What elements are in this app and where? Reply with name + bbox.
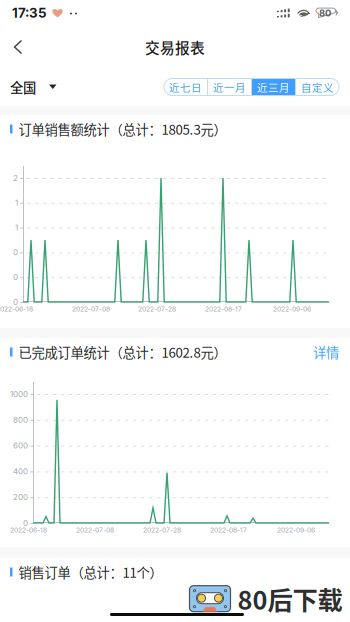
staticText: 80后下载 xyxy=(237,580,342,617)
staticText: 600 xyxy=(13,441,28,450)
staticText: 订单销售额统计（总计：1805.3元） xyxy=(18,119,226,139)
staticText: 近一月 xyxy=(213,79,246,95)
staticText: 0 xyxy=(13,297,18,307)
staticText: 全国 xyxy=(10,77,36,97)
staticText: 交易报表 xyxy=(145,36,205,58)
staticText: 1 xyxy=(15,223,18,232)
staticText: 详情 xyxy=(313,342,339,362)
staticText: 2022-08-17 xyxy=(210,526,247,534)
button[interactable]: 近七日 xyxy=(164,78,207,95)
staticText: 2022-07-28 xyxy=(143,526,181,534)
staticText: 2022-07-28 xyxy=(138,305,176,313)
staticText: 2022-07-08 xyxy=(72,305,110,313)
staticText: 200 xyxy=(13,492,28,502)
staticText: 0 xyxy=(13,248,18,257)
staticText: 2022-09-06 xyxy=(273,305,311,313)
staticText: 近三月 xyxy=(257,79,290,95)
staticText: 2 xyxy=(13,173,18,183)
staticText: 400 xyxy=(13,467,28,476)
button[interactable]: 近三月 xyxy=(252,78,295,95)
staticText: 2022-06-18 xyxy=(10,526,47,534)
staticText: 0 xyxy=(23,518,28,528)
button[interactable]: 详情 xyxy=(302,338,350,366)
button[interactable]: 全国 xyxy=(0,68,65,106)
staticText: 800 xyxy=(13,415,28,425)
staticText: 17:35 xyxy=(12,5,47,21)
staticText: 2022-08-17 xyxy=(205,305,242,313)
staticText: 近七日 xyxy=(169,79,202,95)
staticText: 1 xyxy=(15,198,18,208)
staticText: 1000 xyxy=(10,389,28,399)
staticText: 自定义 xyxy=(301,79,334,95)
staticText: 2022-09-06 xyxy=(277,526,315,534)
staticText: 2022-07-08 xyxy=(76,526,114,534)
staticText: 已完成订单统计（总计：1602.8元） xyxy=(18,342,226,362)
button[interactable]: 返回 xyxy=(0,26,41,68)
staticText: 022-06-18 xyxy=(0,305,33,313)
button[interactable]: 自定义 xyxy=(296,78,339,95)
staticText: 销售订单（总计：11个） xyxy=(18,562,162,582)
staticText: 80 xyxy=(319,7,331,19)
staticText: 0 xyxy=(13,272,18,282)
button[interactable]: 近一月 xyxy=(208,78,251,95)
